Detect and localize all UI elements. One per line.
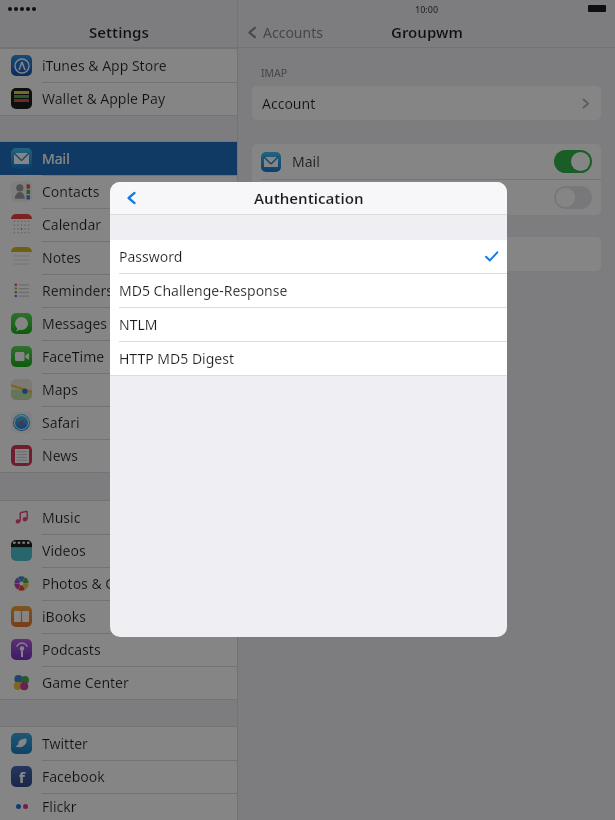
staticText: iBooks	[42, 607, 86, 626]
button[interactable]: Wallet & Apple Pay	[0, 82, 237, 115]
staticText: Podcasts	[42, 640, 101, 659]
button[interactable]: NTLM	[110, 308, 507, 341]
button[interactable]: Accounts	[246, 17, 323, 47]
button[interactable]: Back	[110, 182, 154, 214]
button[interactable]: Photos & Ca	[0, 567, 237, 600]
staticText: Settings	[89, 22, 149, 42]
button[interactable]: Contacts	[0, 175, 237, 208]
staticText: Photos & Ca	[42, 574, 123, 593]
staticText: f	[19, 767, 25, 787]
staticText: Maps	[42, 380, 78, 399]
button[interactable]: Toggle off	[554, 186, 592, 209]
button[interactable]: Reminders	[0, 274, 237, 307]
button[interactable]: Mail	[0, 142, 237, 175]
staticText: Groupwm	[391, 22, 463, 42]
staticText: NTLM	[119, 315, 158, 334]
staticText: Mail	[42, 149, 70, 168]
button[interactable]: Videos	[0, 534, 237, 567]
button[interactable]: f	[0, 760, 237, 793]
button[interactable]: Mail	[252, 144, 601, 179]
button[interactable]: Calendar	[0, 208, 237, 241]
staticText: MD5 Challenge-Response	[119, 281, 288, 300]
staticText: Password	[119, 247, 183, 266]
button[interactable]: HTTP MD5 Digest	[110, 342, 507, 375]
staticText: IMAP	[261, 66, 288, 80]
button[interactable]: Toggle on	[554, 150, 592, 173]
staticText: Twitter	[42, 734, 88, 753]
staticText: Reminders	[42, 281, 113, 300]
staticText: Game Center	[42, 673, 129, 692]
staticText: Accounts	[263, 23, 323, 42]
staticText: FaceTime	[42, 347, 105, 366]
staticText: Authentication	[254, 188, 364, 208]
button[interactable]: Maps	[0, 373, 237, 406]
staticText: Mail	[292, 152, 320, 171]
staticText: 10:00	[415, 3, 439, 15]
button[interactable]	[252, 237, 601, 271]
button[interactable]: Safari	[0, 406, 237, 439]
button[interactable]: Music	[0, 501, 237, 534]
button[interactable]: Toggle off	[252, 180, 601, 215]
staticText: Contacts	[42, 182, 100, 201]
button[interactable]: Game Center	[0, 666, 237, 699]
button[interactable]: Twitter	[0, 727, 237, 760]
button[interactable]: Messages	[0, 307, 237, 340]
button[interactable]: Flickr	[0, 793, 237, 820]
button[interactable]: iBooks	[0, 600, 237, 633]
button[interactable]: News	[0, 439, 237, 472]
button[interactable]: Podcasts	[0, 633, 237, 666]
staticText: Notes	[42, 248, 81, 267]
staticText: Music	[42, 508, 81, 527]
staticText: Videos	[42, 541, 86, 560]
staticText: News	[42, 446, 78, 465]
staticText: HTTP MD5 Digest	[119, 349, 234, 368]
staticText: iTunes & App Store	[42, 56, 167, 75]
button[interactable]: FaceTime	[0, 340, 237, 373]
staticText: Account	[262, 94, 316, 113]
button[interactable]: MD5 Challenge-Response	[110, 274, 507, 307]
staticText: Wallet & Apple Pay	[42, 89, 166, 108]
staticText: Safari	[42, 413, 80, 432]
staticText: Flickr	[42, 797, 77, 816]
staticText: Messages	[42, 314, 108, 333]
button[interactable]: iTunes & App Store	[0, 49, 237, 82]
button[interactable]: Notes	[0, 241, 237, 274]
staticText: Calendar	[42, 215, 102, 234]
button[interactable]: Password	[110, 240, 507, 273]
staticText: Facebook	[42, 767, 105, 786]
button[interactable]: Account	[252, 86, 601, 120]
